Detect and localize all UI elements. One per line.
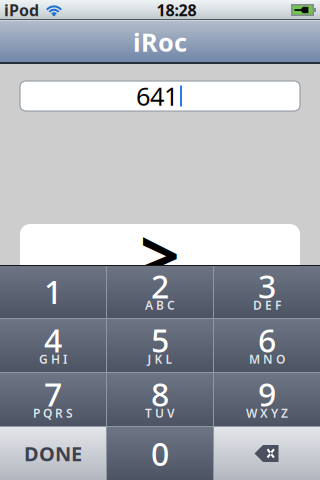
staticText: W X Y Z bbox=[246, 405, 288, 421]
staticText: iRoc bbox=[133, 25, 187, 59]
staticText: 9 bbox=[258, 373, 276, 415]
staticText: 7 bbox=[44, 373, 62, 415]
button[interactable]: 9 bbox=[214, 373, 320, 426]
button[interactable]: 4 bbox=[0, 319, 106, 372]
button[interactable]: 8 bbox=[107, 373, 213, 426]
staticText: 8 bbox=[151, 373, 169, 415]
staticText: 641 bbox=[136, 79, 178, 113]
staticText: 5 bbox=[151, 319, 169, 361]
staticText: 6 bbox=[258, 319, 276, 361]
staticText: T U V bbox=[145, 405, 175, 421]
button[interactable]: 2 bbox=[107, 265, 213, 318]
button[interactable]: 6 bbox=[214, 319, 320, 372]
button[interactable]: 7 bbox=[0, 373, 106, 426]
button[interactable]: DONE bbox=[0, 427, 106, 480]
staticText: J K L bbox=[147, 351, 172, 367]
staticText: 0 bbox=[151, 432, 169, 475]
staticText: 2 bbox=[151, 265, 169, 307]
button[interactable]: 0 bbox=[107, 427, 213, 480]
staticText: > bbox=[140, 208, 180, 300]
button[interactable]: 3 bbox=[214, 265, 320, 318]
button[interactable]: 1 bbox=[0, 265, 106, 318]
staticText: M N O bbox=[249, 351, 285, 367]
staticText: 1 bbox=[44, 270, 62, 313]
staticText: A B C bbox=[145, 297, 175, 313]
button[interactable]: Delete bbox=[214, 427, 320, 480]
button[interactable]: 5 bbox=[107, 319, 213, 372]
staticText: 18:28 bbox=[156, 0, 196, 21]
staticText: D E F bbox=[253, 297, 281, 313]
staticText: 3 bbox=[258, 265, 276, 307]
staticText: 4 bbox=[44, 319, 62, 361]
button[interactable]: > bbox=[0, 224, 320, 284]
staticText: P Q R S bbox=[33, 405, 73, 421]
staticText: iPod bbox=[4, 0, 39, 21]
staticText: DONE bbox=[24, 440, 82, 467]
staticText: G H I bbox=[39, 351, 67, 367]
